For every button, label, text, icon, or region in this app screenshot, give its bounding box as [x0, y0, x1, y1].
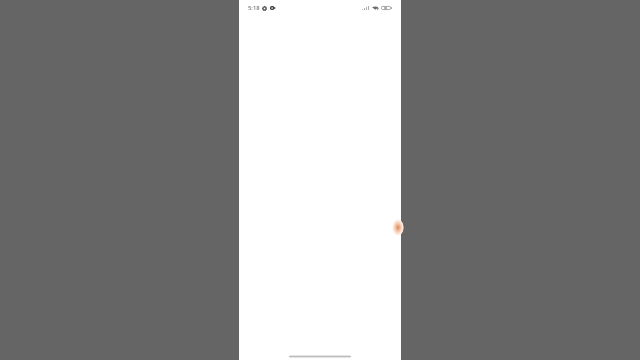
staticText: 5:18	[248, 4, 260, 12]
button[interactable]: Action	[392, 219, 404, 236]
